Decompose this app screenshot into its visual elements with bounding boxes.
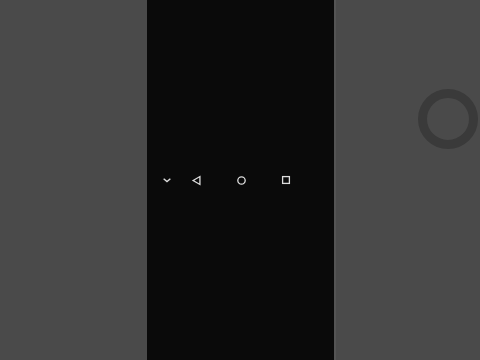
- staticText: 停止: [188, 177, 200, 185]
- button[interactable]: Hide keyboard: [159, 172, 175, 188]
- button[interactable]: Recent apps: [277, 171, 295, 189]
- button[interactable]: Home: [232, 171, 250, 189]
- button[interactable]: Back: [187, 171, 205, 189]
- button[interactable]: 00:05: [149, 175, 203, 186]
- staticText: 00:05: [159, 177, 175, 185]
